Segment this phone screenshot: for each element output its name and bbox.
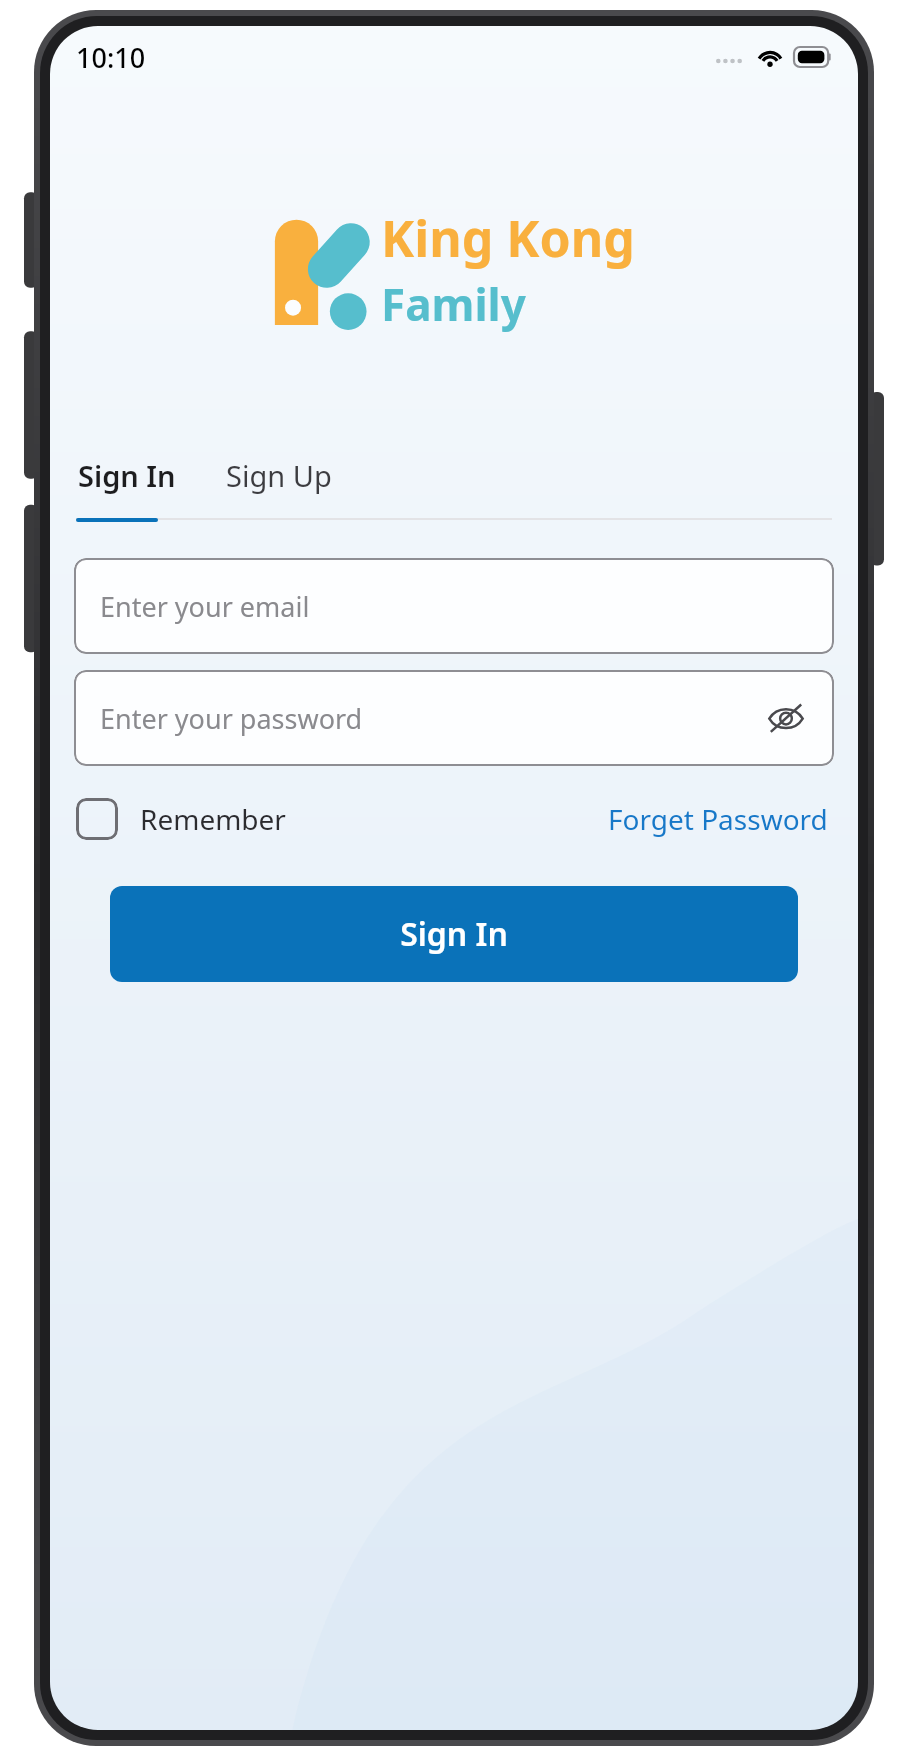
staticText: Forget Password [608, 800, 828, 838]
button[interactable]: Show password [764, 696, 808, 740]
staticText: 10:10 [76, 39, 146, 76]
staticText: Family [381, 274, 526, 334]
button[interactable]: Sign In [76, 452, 178, 499]
button[interactable]: Sign Up [224, 452, 334, 499]
button[interactable]: Sign In [110, 886, 798, 982]
button[interactable]: Enter your email [74, 558, 834, 654]
button[interactable]: Remember [76, 798, 292, 840]
staticText: Enter your password [100, 700, 764, 737]
staticText: King Kong [381, 204, 635, 272]
staticText: Sign Up [226, 456, 332, 495]
staticText: Enter your email [100, 588, 808, 625]
button[interactable]: Forget Password [604, 796, 832, 842]
button[interactable]: Enter your password [74, 670, 834, 766]
staticText: Remember [140, 800, 286, 838]
staticText: Sign In [400, 912, 508, 956]
staticText: Sign In [78, 456, 176, 495]
